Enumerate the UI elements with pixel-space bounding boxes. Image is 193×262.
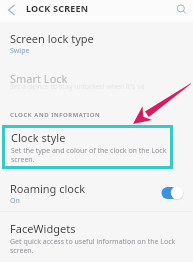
- button[interactable]: Screen lock type: [0, 31, 193, 61]
- button[interactable]: Back: [0, 1, 22, 22]
- staticText: FaceWidgets: [10, 221, 76, 236]
- staticText: Smart Lock: [10, 71, 68, 86]
- button[interactable]: FaceWidgets: [0, 221, 193, 255]
- staticText: Set the type and colour of the clock on …: [11, 146, 167, 164]
- staticText: Clock style: [11, 130, 66, 145]
- button[interactable]: Search: [169, 1, 193, 22]
- staticText: Roaming clock: [10, 181, 86, 196]
- staticText: Screen lock type: [10, 31, 94, 46]
- staticText: CLOCK AND INFORMATION: [10, 111, 101, 119]
- button[interactable]: Smart Lock: [0, 71, 193, 97]
- button[interactable]: Roaming clock toggle: [160, 185, 185, 201]
- button[interactable]: Clock style: [2, 125, 173, 169]
- staticText: Get quick access to useful information o…: [10, 237, 176, 255]
- staticText: LOCK SCREEN: [26, 2, 89, 14]
- staticText: On: [10, 196, 20, 206]
- staticText: Swipe: [10, 46, 30, 56]
- staticText: Set a device to stay unlocked when it's …: [10, 82, 145, 92]
